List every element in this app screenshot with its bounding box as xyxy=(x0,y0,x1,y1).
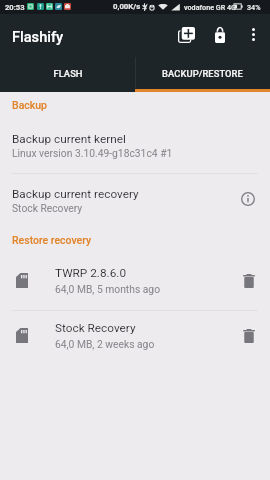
staticText: Backup current kernel xyxy=(12,132,126,146)
staticText: TWRP 2.8.6.0 xyxy=(55,266,127,280)
staticText: 34% xyxy=(247,3,261,11)
button[interactable]: Delete Stock Recovery xyxy=(235,322,263,350)
staticText: Flashify xyxy=(12,28,64,45)
staticText: Backup current recovery xyxy=(12,187,139,201)
button[interactable]: More options xyxy=(238,19,269,50)
button[interactable]: FLASH xyxy=(0,53,135,92)
staticText: 64,0 MB, 5 months ago xyxy=(55,283,161,295)
staticText: 0,00K/s xyxy=(113,2,141,11)
button[interactable]: Info xyxy=(234,185,262,213)
staticText: 64,0 MB, 2 weeks ago xyxy=(55,338,155,350)
button[interactable] xyxy=(0,125,270,161)
staticText: Stock Recovery xyxy=(12,202,83,214)
staticText: Stock Recovery xyxy=(55,321,136,335)
staticText: 20:53 xyxy=(5,3,25,12)
staticText: FLASH xyxy=(53,68,83,79)
button[interactable] xyxy=(0,259,270,295)
button[interactable]: Delete TWRP 2.8.6.0 xyxy=(235,267,263,295)
staticText: BACKUP/RESTORE xyxy=(162,68,243,79)
button[interactable]: Lock xyxy=(204,19,236,51)
button[interactable]: BACKUP/RESTORE xyxy=(135,53,270,92)
staticText: vodafone GR 4G xyxy=(184,3,236,11)
button[interactable]: New backup xyxy=(170,19,202,51)
staticText: Backup xyxy=(12,99,47,111)
staticText: Restore recovery xyxy=(12,234,92,246)
button[interactable] xyxy=(0,180,270,216)
button[interactable] xyxy=(0,314,270,350)
staticText: Linux version 3.10.49-g18c31c4 #1 xyxy=(12,147,173,159)
